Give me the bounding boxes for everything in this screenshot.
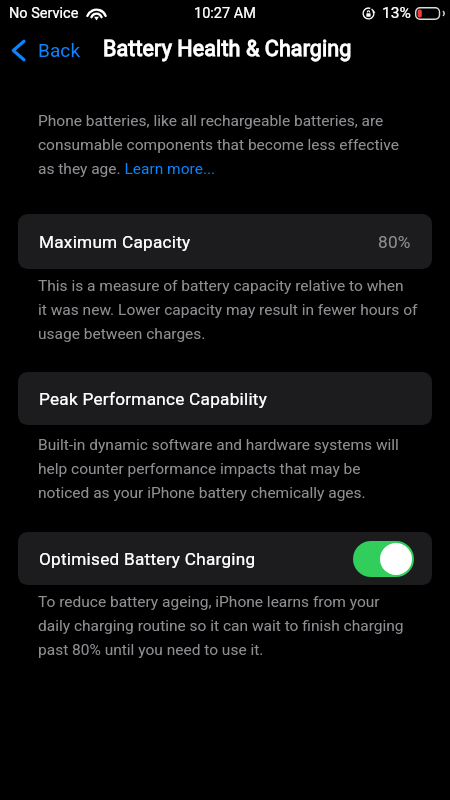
button[interactable]: Optimised Battery Charging bbox=[18, 532, 432, 585]
staticText: 13% bbox=[382, 4, 411, 22]
staticText: Optimised Battery Charging bbox=[39, 549, 256, 569]
staticText: This is a measure of battery capacity re… bbox=[38, 272, 418, 344]
staticText: 10:27 AM bbox=[194, 5, 256, 22]
button[interactable]: Back bbox=[0, 33, 87, 63]
button[interactable]: Peak Performance Capability bbox=[18, 372, 432, 425]
staticText: Maximum Capacity bbox=[39, 232, 191, 252]
staticText: Built-in dynamic software and hardware s… bbox=[38, 431, 399, 503]
staticText: Peak Performance Capability bbox=[39, 389, 268, 409]
button[interactable]: Maximum Capacity bbox=[18, 214, 432, 269]
staticText: No Service bbox=[9, 5, 79, 22]
other: Rotation lock bbox=[362, 7, 375, 20]
staticText: Back bbox=[38, 39, 81, 61]
staticText: Battery Health & Charging bbox=[103, 36, 352, 61]
staticText: To reduce battery ageing, iPhone learns … bbox=[38, 588, 404, 660]
button[interactable]: Optimised Battery Charging toggle bbox=[353, 541, 414, 577]
staticText: Phone batteries, like all rechargeable b… bbox=[38, 107, 399, 179]
staticText: 80% bbox=[378, 232, 411, 252]
